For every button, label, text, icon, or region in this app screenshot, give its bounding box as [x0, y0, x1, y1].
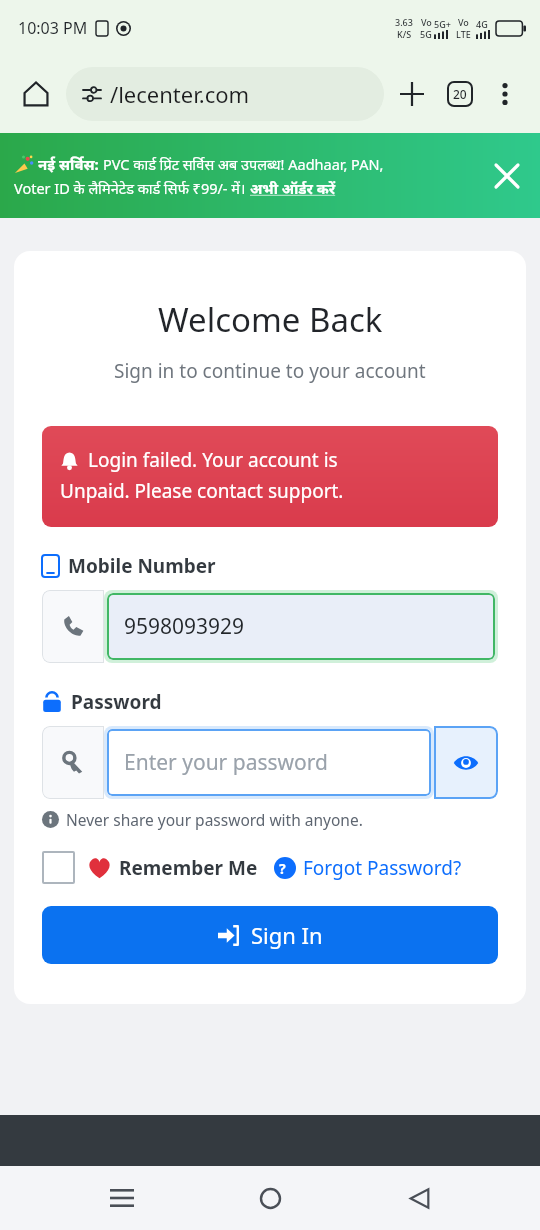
button[interactable]: Enter your password [107, 729, 431, 796]
staticText: अभी ऑर्डर करें [250, 178, 336, 198]
staticText: Enter your password [124, 748, 328, 777]
button[interactable]: /lecenter.com [66, 67, 384, 121]
staticText: Password [71, 689, 162, 715]
staticText: K/S [397, 28, 412, 40]
staticText: /lecenter.com [110, 79, 250, 109]
staticText: नई सर्विस: [38, 154, 99, 174]
button[interactable]: Recent apps [95, 1171, 149, 1225]
staticText: Vo [458, 16, 469, 28]
staticText: 4G [476, 18, 488, 30]
staticText: 20 [453, 86, 467, 102]
staticText: Voter ID के लैमिनेटेड कार्ड सिर्फ ₹99/- … [14, 178, 250, 198]
button[interactable]: Tabs: 20 [438, 72, 482, 116]
staticText: Welcome Back [158, 297, 383, 342]
staticText: Vo [421, 16, 432, 28]
button[interactable]: Home [243, 1171, 297, 1225]
staticText: Mobile Number [68, 553, 216, 579]
staticText: Unpaid. Please contact support. [60, 478, 344, 504]
staticText: Sign in to continue to your account [114, 358, 426, 384]
staticText: 9598093929 [124, 612, 245, 641]
button[interactable]: 9598093929 [107, 593, 495, 660]
staticText: Forgot Password? [303, 855, 462, 881]
button[interactable] [42, 590, 104, 663]
button[interactable]: Back [392, 1171, 446, 1225]
button[interactable]: Close banner [484, 153, 530, 199]
button[interactable] [42, 726, 104, 799]
staticText: 5G+ [434, 18, 451, 30]
button[interactable]: अभी ऑर्डर करें [250, 178, 336, 198]
staticText: Never share your password with anyone. [66, 809, 363, 830]
button[interactable]: More options [484, 73, 526, 115]
staticText: LTE [456, 28, 471, 40]
staticText: ? [279, 859, 286, 878]
staticText: 5G [420, 28, 432, 40]
staticText: Sign In [251, 920, 323, 950]
button[interactable]: Home [14, 72, 58, 116]
button[interactable]: Remember Me [42, 851, 258, 884]
staticText: PVC कार्ड प्रिंट सर्विस अब उपलब्ध! Aadha… [103, 154, 384, 174]
staticText: Login failed. Your account is [88, 447, 338, 473]
staticText: Remember Me [119, 855, 258, 881]
button[interactable]: ? [274, 855, 462, 881]
button[interactable]: Sign In [42, 906, 498, 964]
button[interactable]: New tab [390, 72, 434, 116]
staticText: 10:03 PM [18, 17, 88, 39]
staticText: 3.63 [395, 16, 413, 28]
button[interactable]: Show password [434, 726, 498, 799]
